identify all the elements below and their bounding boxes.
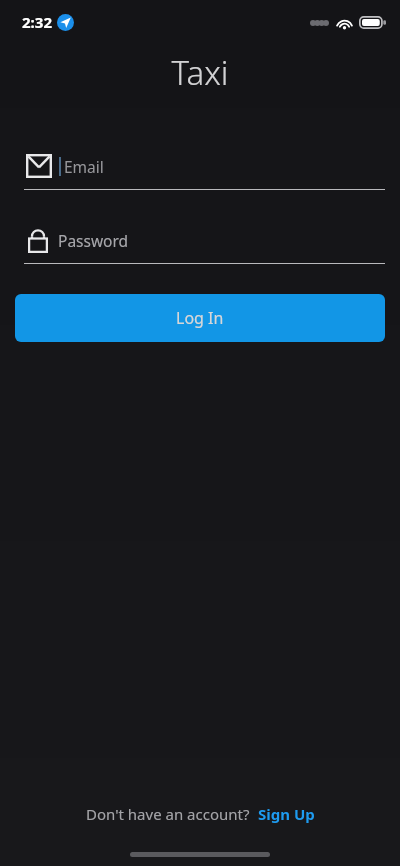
staticText: Email: [64, 156, 104, 177]
other: Password: [28, 228, 48, 253]
staticText: Log In: [176, 307, 224, 329]
staticText: Sign Up: [258, 804, 315, 824]
staticText: Taxi: [0, 50, 400, 95]
staticText: Don't have an account?: [86, 804, 250, 824]
button[interactable]: Log In: [15, 294, 385, 342]
button[interactable]: Sign Up: [258, 804, 315, 824]
staticText: 2:32: [22, 12, 52, 32]
staticText: Password: [58, 230, 129, 251]
button[interactable]: Email: [0, 148, 400, 184]
button[interactable]: Password: [0, 222, 400, 258]
other: Email: [26, 154, 52, 178]
